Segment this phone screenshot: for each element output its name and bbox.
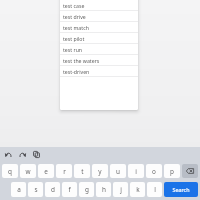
staticText: d (51, 185, 55, 194)
button[interactable]: g (79, 182, 94, 197)
staticText: g (85, 185, 89, 194)
button[interactable]: test match (60, 22, 138, 33)
button[interactable]: h (96, 182, 111, 197)
staticText: test match (63, 24, 89, 31)
staticText: a (17, 185, 21, 194)
staticText: t (81, 167, 84, 176)
staticText: j (120, 185, 122, 194)
staticText: i (135, 167, 137, 176)
staticText: s (34, 185, 38, 194)
button[interactable]: o (146, 164, 162, 178)
button[interactable]: p (164, 164, 180, 178)
button[interactable]: Copy (31, 149, 42, 160)
button[interactable]: test case (60, 0, 138, 11)
button[interactable]: t (74, 164, 90, 178)
staticText: Search (172, 186, 190, 193)
button[interactable]: u (110, 164, 126, 178)
button[interactable]: r (56, 164, 72, 178)
button[interactable]: Undo (3, 149, 14, 160)
staticText: r (63, 167, 66, 176)
staticText: y (98, 167, 102, 176)
button[interactable]: test drive (60, 11, 138, 22)
staticText: e (44, 167, 48, 176)
staticText: p (170, 167, 174, 176)
staticText: u (116, 167, 120, 176)
staticText: f (68, 185, 71, 194)
staticText: w (25, 167, 31, 176)
staticText: test drive (63, 13, 86, 20)
staticText: test pilot (63, 35, 85, 42)
button[interactable]: i (128, 164, 144, 178)
staticText: l (154, 185, 156, 194)
button[interactable]: s (28, 182, 43, 197)
staticText: test run (63, 46, 83, 53)
button[interactable]: a (11, 182, 26, 197)
staticText: h (102, 185, 106, 194)
staticText: test case (63, 2, 85, 9)
button[interactable]: l (147, 182, 162, 197)
button[interactable]: Search (164, 182, 198, 197)
staticText: o (152, 167, 156, 176)
staticText: k (136, 185, 140, 194)
button[interactable]: e (38, 164, 54, 178)
button[interactable]: Redo (17, 149, 28, 160)
button[interactable]: test pilot (60, 33, 138, 44)
staticText: q (8, 167, 12, 176)
button[interactable]: j (113, 182, 128, 197)
button[interactable]: d (45, 182, 60, 197)
button[interactable]: f (62, 182, 77, 197)
button[interactable]: y (92, 164, 108, 178)
button[interactable]: Backspace (182, 164, 198, 178)
button[interactable]: test run (60, 44, 138, 55)
staticText: test-driven (63, 68, 90, 75)
button[interactable]: test the waters (60, 55, 138, 66)
button[interactable]: w (20, 164, 36, 178)
button[interactable]: test-driven (60, 66, 138, 77)
staticText: test the waters (63, 57, 100, 64)
button[interactable]: k (130, 182, 145, 197)
button[interactable]: q (2, 164, 18, 178)
